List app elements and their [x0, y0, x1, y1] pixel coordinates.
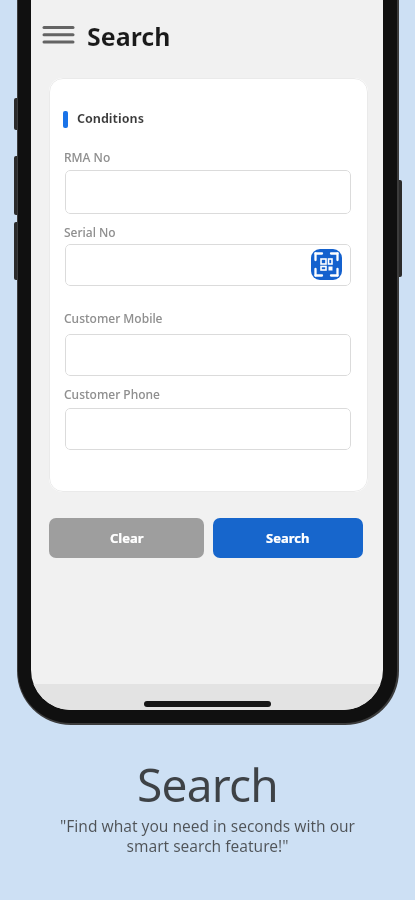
staticText: "Find what you need in seconds with our … — [0, 815, 415, 857]
staticText: Search — [0, 753, 415, 816]
staticText: Clear — [110, 529, 144, 547]
staticText: RMA No — [64, 149, 111, 165]
button[interactable] — [41, 22, 79, 50]
button[interactable] — [65, 408, 351, 450]
staticText: Serial No — [64, 224, 116, 240]
staticText: Conditions — [77, 110, 144, 127]
staticText: Customer Mobile — [64, 310, 163, 326]
staticText: Search — [87, 19, 171, 53]
button[interactable]: Clear — [49, 518, 204, 558]
staticText: Search — [266, 529, 310, 547]
button[interactable]: Search — [213, 518, 363, 558]
staticText: Customer Phone — [64, 386, 160, 402]
button[interactable] — [65, 170, 351, 214]
button[interactable] — [65, 244, 351, 286]
button[interactable] — [311, 249, 342, 280]
button[interactable] — [65, 334, 351, 376]
